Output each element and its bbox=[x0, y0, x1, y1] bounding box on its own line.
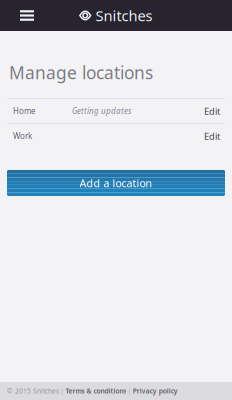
button[interactable]: Snitches bbox=[79, 0, 153, 31]
staticText: | bbox=[128, 387, 132, 395]
button[interactable]: Home bbox=[0, 99, 232, 123]
staticText: Home bbox=[13, 106, 36, 116]
staticText: Edit bbox=[204, 130, 220, 142]
staticText: Add a location bbox=[79, 176, 152, 190]
staticText: | bbox=[60, 387, 64, 395]
staticText: Manage locations bbox=[9, 61, 153, 84]
staticText: Work bbox=[13, 131, 32, 141]
button[interactable]: Menu bbox=[10, 0, 44, 31]
button[interactable]: Work bbox=[0, 124, 232, 148]
staticText: © 2015 Snitches bbox=[7, 387, 59, 395]
staticText: Snitches bbox=[96, 6, 153, 25]
button[interactable]: Privacy policy bbox=[133, 387, 178, 395]
staticText: Terms & conditions bbox=[65, 387, 126, 395]
staticText: Getting updates bbox=[72, 106, 131, 116]
staticText: Edit bbox=[204, 105, 220, 117]
staticText: Privacy policy bbox=[133, 387, 178, 395]
button[interactable]: Add a location bbox=[7, 170, 225, 196]
button[interactable]: Terms & conditions bbox=[65, 387, 126, 395]
